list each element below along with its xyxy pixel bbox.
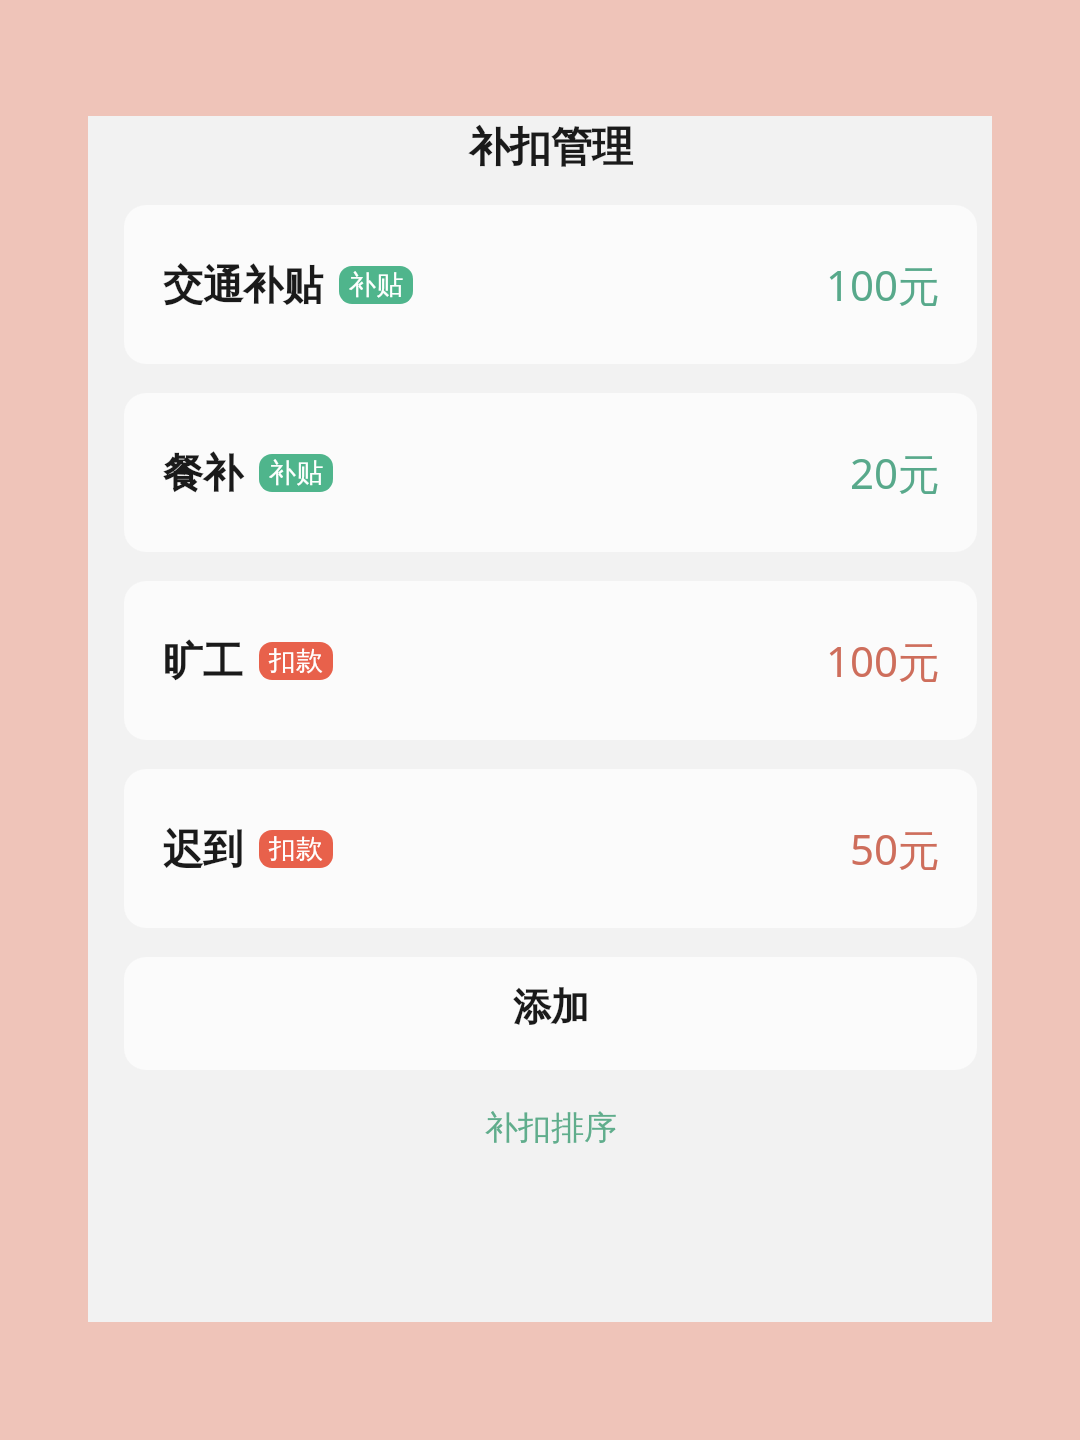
staticText: 迟到 (163, 824, 243, 874)
staticText: 20元 (850, 444, 941, 501)
staticText: 扣款 (269, 644, 323, 678)
staticText: 补贴 (269, 456, 323, 490)
button[interactable]: 添加 (124, 957, 977, 1070)
button[interactable]: 补扣排序 (124, 1099, 977, 1215)
staticText: 交通补贴 (163, 260, 323, 310)
button[interactable]: 旷工 (124, 581, 977, 740)
staticText: 旷工 (163, 636, 243, 686)
staticText: 100元 (826, 632, 941, 689)
button[interactable]: 迟到 (124, 769, 977, 928)
staticText: 餐补 (163, 448, 243, 498)
staticText: 补扣排序 (485, 1107, 617, 1149)
staticText: 补贴 (349, 268, 403, 302)
staticText: 50元 (850, 820, 941, 877)
button[interactable]: 交通补贴 (124, 205, 977, 364)
staticText: 添加 (513, 983, 589, 1031)
staticText: 100元 (826, 256, 941, 313)
button[interactable]: 餐补 (124, 393, 977, 552)
staticText: 扣款 (269, 832, 323, 866)
staticText: 补扣管理 (469, 122, 633, 174)
